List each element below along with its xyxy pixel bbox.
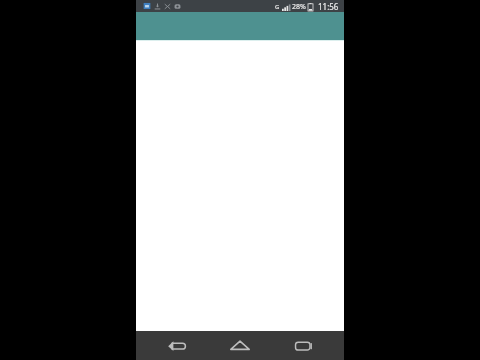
staticText: 11:56 (318, 1, 339, 12)
button[interactable]: Back (154, 331, 200, 360)
staticText: 28% (292, 2, 306, 12)
button[interactable]: Recent apps (281, 331, 327, 360)
staticText: G (275, 3, 280, 11)
button[interactable]: Home (217, 331, 263, 360)
